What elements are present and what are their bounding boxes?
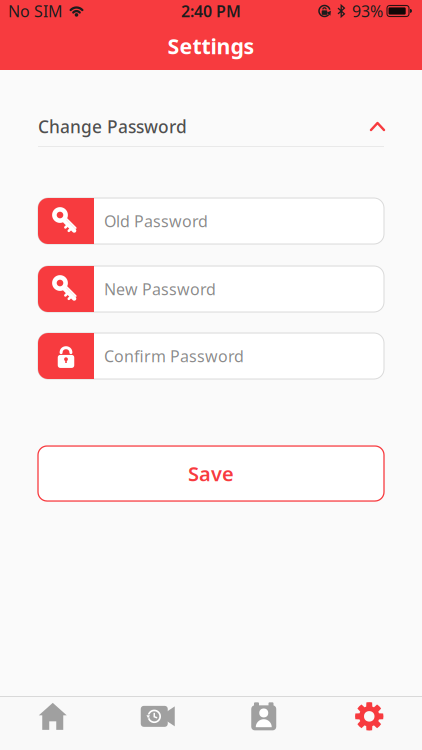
staticText: 93% [352, 0, 383, 22]
staticText: No SIM [8, 0, 63, 22]
staticText: 2:40 PM [181, 0, 241, 22]
button[interactable]: Save [38, 446, 384, 501]
button[interactable]: Old Password [38, 198, 384, 244]
staticText: New Password [104, 278, 216, 300]
staticText: Old Password [104, 210, 208, 232]
button[interactable]: Confirm Password [38, 333, 384, 379]
staticText: Change Password [38, 115, 187, 138]
button[interactable]: Settings [316, 697, 422, 750]
button[interactable]: Home [0, 697, 105, 750]
staticText: Confirm Password [104, 345, 244, 367]
button[interactable]: Recordings [105, 697, 211, 750]
button[interactable]: Change Password [38, 70, 384, 147]
button[interactable]: New Password [38, 266, 384, 312]
staticText: Settings [167, 32, 254, 60]
staticText: Save [188, 460, 234, 487]
button[interactable]: Contacts [211, 697, 316, 750]
